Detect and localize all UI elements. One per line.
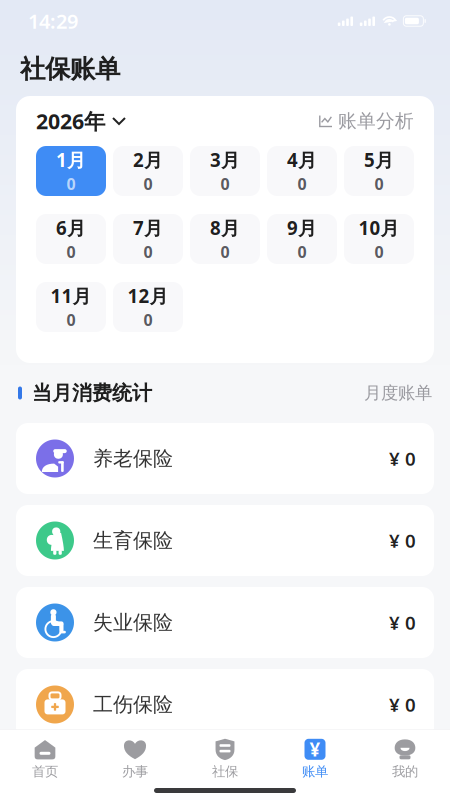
- button[interactable]: 8月: [190, 214, 260, 264]
- staticText: 0: [374, 241, 383, 262]
- staticText: 工伤保险: [93, 692, 173, 717]
- button[interactable]: 9月: [267, 214, 337, 264]
- staticText: 2月: [133, 147, 163, 172]
- staticText: ¥: [309, 737, 320, 762]
- button[interactable]: 办事: [90, 738, 180, 780]
- staticText: 我的: [392, 763, 418, 780]
- staticText: 首页: [32, 763, 58, 780]
- staticText: 0: [66, 173, 75, 194]
- staticText: 账单: [302, 763, 328, 780]
- staticText: ¥ 0: [389, 528, 416, 553]
- button[interactable]: 11月: [36, 282, 106, 332]
- staticText: 账单分析: [338, 109, 414, 132]
- staticText: 0: [297, 173, 306, 194]
- staticText: 2026年: [36, 107, 105, 135]
- button[interactable]: 社保: [180, 738, 270, 780]
- staticText: 0: [66, 309, 75, 330]
- staticText: 当月消费统计: [32, 381, 152, 405]
- staticText: 社保账单: [20, 53, 120, 84]
- staticText: 0: [66, 241, 75, 262]
- staticText: 0: [143, 173, 152, 194]
- button[interactable]: 12月: [113, 282, 183, 332]
- staticText: 养老保险: [93, 446, 173, 471]
- staticText: 0: [220, 241, 229, 262]
- staticText: 0: [143, 241, 152, 262]
- staticText: 3月: [210, 147, 240, 172]
- staticText: 12月: [127, 283, 168, 308]
- button[interactable]: 失业保险: [16, 587, 434, 658]
- staticText: 8月: [210, 215, 240, 240]
- staticText: 7月: [133, 215, 163, 240]
- button[interactable]: 工伤保险: [16, 669, 434, 740]
- button[interactable]: 首页: [0, 738, 90, 780]
- staticText: 0: [220, 173, 229, 194]
- button[interactable]: 月度账单: [364, 382, 432, 404]
- button[interactable]: ¥: [270, 738, 360, 780]
- button[interactable]: 4月: [267, 146, 337, 196]
- button[interactable]: 2026年: [36, 107, 125, 135]
- staticText: 0: [374, 173, 383, 194]
- staticText: 月度账单: [364, 382, 432, 404]
- button[interactable]: 3月: [190, 146, 260, 196]
- button[interactable]: 5月: [344, 146, 414, 196]
- staticText: 办事: [122, 763, 148, 780]
- staticText: 1月: [56, 147, 86, 172]
- button[interactable]: 6月: [36, 214, 106, 264]
- staticText: 0: [297, 241, 306, 262]
- staticText: 9月: [287, 215, 317, 240]
- staticText: 0: [143, 309, 152, 330]
- staticText: 11月: [50, 283, 91, 308]
- button[interactable]: 2月: [113, 146, 183, 196]
- button[interactable]: 账单分析: [319, 109, 414, 132]
- staticText: ¥ 0: [389, 692, 416, 717]
- staticText: 生育保险: [93, 528, 173, 553]
- button[interactable]: 10月: [344, 214, 414, 264]
- button[interactable]: 生育保险: [16, 505, 434, 576]
- staticText: 失业保险: [93, 610, 173, 635]
- staticText: 4月: [287, 147, 317, 172]
- button[interactable]: 1月: [36, 146, 106, 196]
- button[interactable]: 我的: [360, 738, 450, 780]
- staticText: 10月: [358, 215, 399, 240]
- button[interactable]: 7月: [113, 214, 183, 264]
- button[interactable]: 养老保险: [16, 423, 434, 494]
- staticText: ¥ 0: [389, 446, 416, 471]
- staticText: ¥ 0: [389, 610, 416, 635]
- staticText: 5月: [364, 147, 394, 172]
- staticText: 14:29: [28, 8, 78, 34]
- staticText: 社保: [212, 763, 238, 780]
- staticText: 6月: [56, 215, 86, 240]
